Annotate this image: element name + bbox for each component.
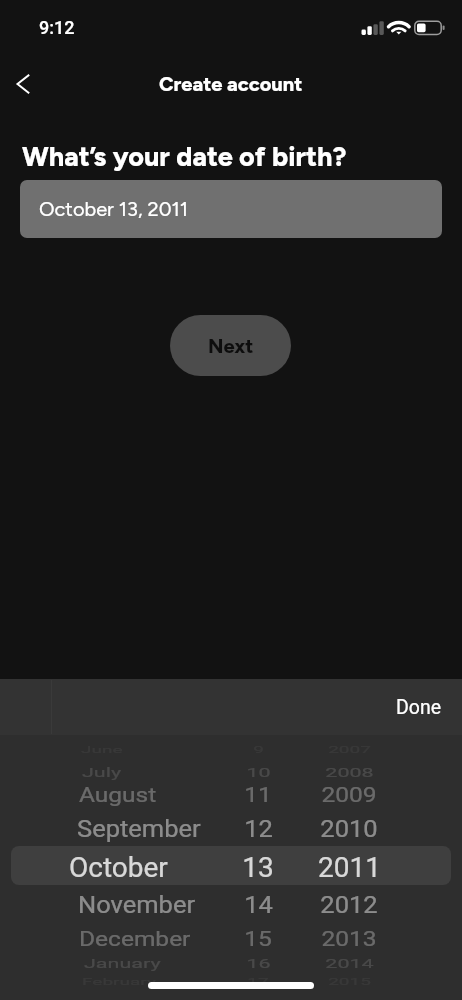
staticText: 15 (244, 927, 272, 951)
staticText: 16 (246, 956, 271, 971)
staticText: 2009 (321, 783, 377, 807)
staticText: 9 (253, 745, 264, 755)
button[interactable]: Next (170, 315, 291, 376)
staticText: 2008 (325, 765, 374, 780)
staticText: 2007 (328, 745, 371, 755)
staticText: October 13, 2011 (39, 197, 189, 221)
staticText: 12 (244, 815, 273, 843)
staticText: 17 (247, 977, 269, 987)
staticText: 2010 (320, 815, 378, 843)
staticText: June (81, 745, 123, 755)
staticText: 2015 (328, 977, 371, 987)
button[interactable]: Done (396, 696, 442, 719)
staticText: August (79, 783, 157, 807)
staticText: 14 (244, 891, 273, 919)
staticText: February (82, 977, 156, 987)
staticText: November (78, 891, 196, 919)
staticText: 9:12 (39, 17, 75, 38)
staticText: December (79, 927, 191, 951)
staticText: 2012 (320, 891, 378, 919)
staticText: July (82, 765, 122, 780)
staticText: January (84, 956, 161, 971)
button[interactable]: October 13, 2011 (20, 180, 442, 238)
staticText: 2014 (325, 956, 374, 971)
staticText: 13 (242, 851, 274, 884)
staticText: Create account (159, 72, 303, 96)
staticText: Next (208, 334, 254, 358)
staticText: 10 (246, 765, 271, 780)
button[interactable]: Back (2, 62, 46, 106)
staticText: Done (396, 696, 442, 719)
staticText: October (69, 851, 168, 884)
staticText: September (77, 815, 201, 843)
staticText: 2011 (318, 851, 381, 884)
staticText: 11 (244, 783, 272, 807)
staticText: 2013 (321, 927, 377, 951)
staticText: What’s your date of birth? (22, 140, 347, 172)
